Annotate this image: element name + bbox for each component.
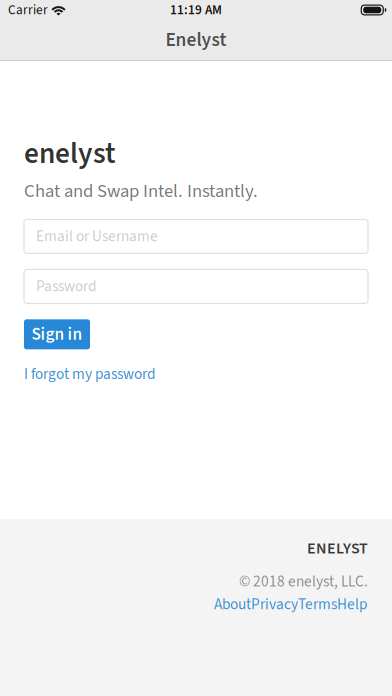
button[interactable]: Help bbox=[337, 594, 368, 615]
staticText: I forgot my password bbox=[24, 363, 156, 385]
staticText: Terms bbox=[298, 594, 337, 615]
staticText: About bbox=[214, 594, 251, 615]
staticText: Help bbox=[337, 594, 368, 615]
staticText: 11:19 AM bbox=[170, 0, 222, 19]
staticText: Sign in bbox=[31, 322, 82, 347]
staticText: Email or Username bbox=[36, 225, 158, 247]
staticText: enelyst bbox=[24, 133, 116, 175]
staticText: Carrier bbox=[8, 0, 48, 19]
button[interactable]: About bbox=[214, 594, 251, 615]
staticText: Enelyst bbox=[165, 26, 226, 54]
button[interactable]: Terms bbox=[298, 594, 337, 615]
staticText: Chat and Swap Intel. Instantly. bbox=[24, 178, 258, 204]
staticText: Password bbox=[36, 275, 97, 297]
staticText: © 2018 enelyst, LLC. bbox=[239, 571, 368, 593]
staticText: ENELYST bbox=[307, 537, 368, 560]
button[interactable]: Sign in bbox=[24, 319, 90, 349]
button[interactable]: Email or Username bbox=[24, 219, 368, 253]
button[interactable]: I forgot my password bbox=[24, 363, 156, 385]
button[interactable]: Privacy bbox=[251, 594, 298, 615]
button[interactable]: Password bbox=[24, 269, 368, 303]
staticText: Privacy bbox=[251, 594, 298, 615]
